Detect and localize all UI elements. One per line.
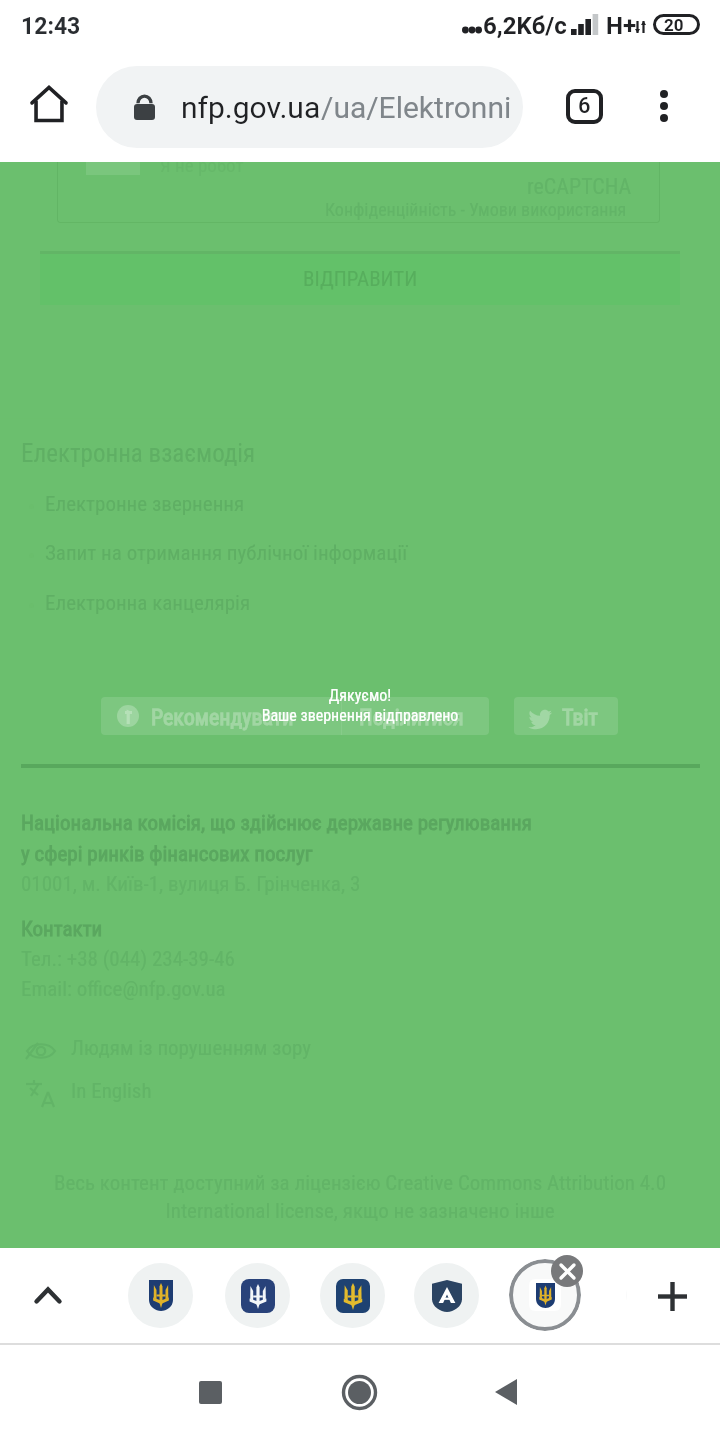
staticText: H+: [606, 12, 637, 40]
button[interactable]: nfp.gov.ua: [96, 66, 523, 148]
staticText: nfp.gov.ua: [181, 90, 321, 125]
staticText: Електронна взаємодія: [21, 439, 256, 468]
staticText: Електронне звернення: [45, 492, 245, 517]
staticText: ВІДПРАВИТИ: [303, 267, 418, 292]
staticText: reCAPTCHA: [527, 174, 632, 200]
staticText: Весь контент доступний за ліцензією Crea…: [0, 1171, 720, 1223]
staticText: Рекомендувати: [151, 705, 294, 731]
staticText: 6,2Kб/c: [483, 12, 567, 40]
button[interactable]: Tab: [225, 1263, 290, 1328]
button[interactable]: Back: [478, 1364, 534, 1420]
staticText: Твіт: [562, 705, 598, 731]
button[interactable]: Switch tabs: [556, 78, 613, 135]
button[interactable]: Close tab: [551, 1255, 583, 1287]
button[interactable]: Expand tab switcher: [19, 1266, 77, 1324]
staticText: Запит на отримання публічної інформації: [45, 541, 408, 566]
staticText: Ваше звернення відправлено: [0, 706, 720, 725]
button[interactable]: New tab: [643, 1267, 701, 1325]
staticText: Національна комісія, що здійснює державн…: [21, 811, 532, 836]
staticText: Тел.: +38 (044) 234-39-46: [21, 947, 235, 972]
button[interactable]: Share on Twitter: [514, 697, 618, 735]
button[interactable]: Share on Facebook: [101, 697, 489, 735]
staticText: Електронна канцелярія: [45, 591, 251, 616]
staticText: In English: [71, 1079, 152, 1104]
staticText: Конфіденційність - Умови використання: [325, 199, 627, 220]
staticText: 20: [664, 15, 684, 35]
button[interactable]: Tab: [128, 1263, 193, 1328]
staticText: Людям із порушенням зору: [71, 1036, 312, 1061]
staticText: /ua/Elektronni: [321, 90, 512, 125]
staticText: Email: office@nfp.gov.ua: [21, 977, 226, 1002]
staticText: 01001, м. Київ-1, вулиця Б. Грінченка, 3: [21, 872, 361, 897]
button[interactable]: Recent apps: [182, 1364, 238, 1420]
button[interactable]: Tab: [414, 1263, 479, 1328]
staticText: Контакти: [21, 917, 103, 942]
staticText: 6: [578, 93, 591, 119]
staticText: Дякуємо!: [0, 686, 720, 705]
button[interactable]: Home: [331, 1364, 387, 1420]
staticText: 12:43: [21, 13, 81, 40]
button[interactable]: Current tab: [509, 1259, 581, 1331]
staticText: Поділитися: [359, 705, 464, 731]
button[interactable]: More options: [635, 77, 692, 134]
button[interactable]: Tab: [320, 1263, 385, 1328]
staticText: у сфері ринків фінансових послуг: [21, 842, 313, 867]
button[interactable]: Home: [20, 75, 77, 132]
